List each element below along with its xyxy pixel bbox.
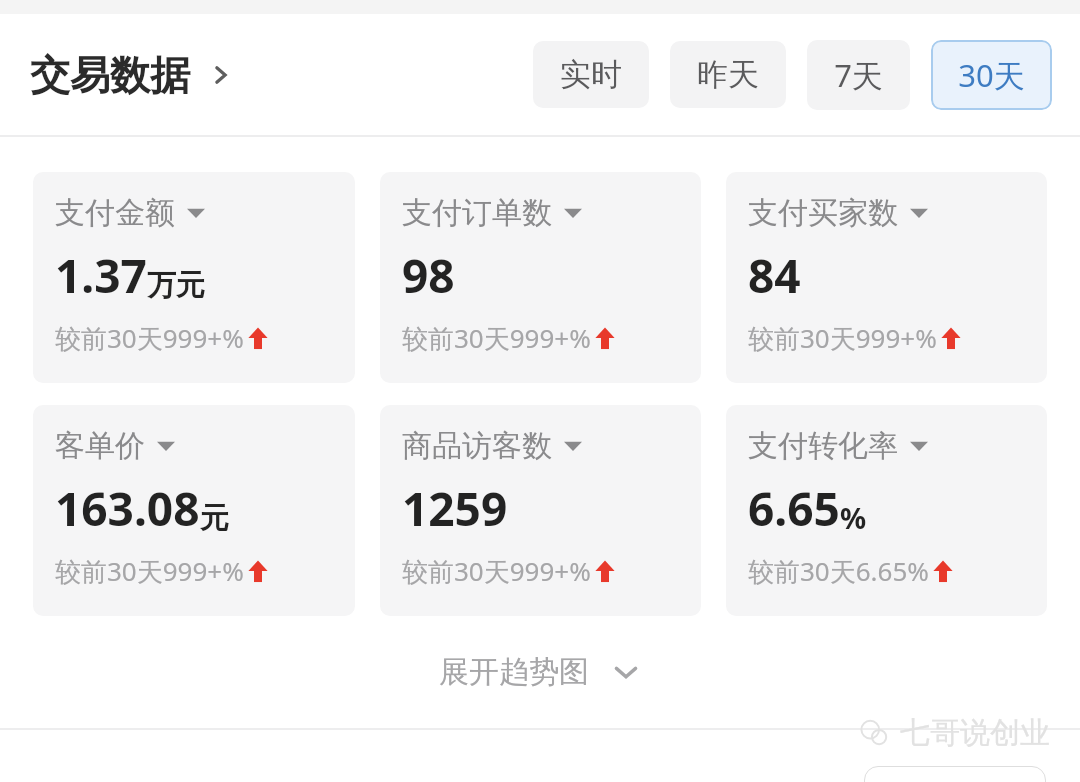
staticText: 实时 — [560, 55, 622, 94]
staticText: 6.65 — [748, 477, 840, 540]
button[interactable]: 支付金额 — [33, 172, 355, 383]
button[interactable]: 支付买家数 — [726, 172, 1047, 383]
staticText: 1.37 — [55, 244, 147, 307]
staticText: 1259 — [402, 477, 508, 540]
staticText: 支付订单数 — [402, 194, 552, 232]
staticText: 较前30天6.65% — [748, 553, 929, 589]
staticText: 商品访客数 — [402, 427, 552, 465]
staticText: 客单价 — [55, 427, 145, 465]
button[interactable]: 30天 — [931, 40, 1052, 110]
staticText: 支付金额 — [55, 194, 175, 232]
staticText: 较前30天999+% — [748, 320, 937, 356]
staticText: 7天 — [834, 54, 883, 96]
staticText: 163.08 — [55, 477, 200, 540]
staticText: 支付买家数 — [748, 194, 898, 232]
staticText: 较前30天999+% — [402, 553, 591, 589]
button[interactable]: 昨天 — [670, 41, 786, 108]
staticText: 支付转化率 — [748, 427, 898, 465]
button[interactable]: 交易数据 — [30, 50, 242, 100]
staticText: 万元 — [147, 267, 205, 304]
button[interactable]: 商品访客数 — [380, 405, 701, 616]
staticText: 较前30天999+% — [55, 553, 244, 589]
staticText: 30天 — [958, 54, 1025, 96]
button[interactable]: 7天 — [807, 40, 910, 110]
staticText: 七哥说创业 — [900, 714, 1050, 752]
staticText: 84 — [748, 244, 801, 307]
staticText: % — [840, 498, 867, 537]
staticText: 较前30天999+% — [402, 320, 591, 356]
button[interactable]: 展开趋势图 — [419, 643, 661, 701]
button[interactable]: 支付订单数 — [380, 172, 701, 383]
button[interactable]: 支付转化率 — [726, 405, 1047, 616]
button[interactable]: 实时 — [533, 41, 649, 108]
staticText: 昨天 — [697, 55, 759, 94]
staticText: 元 — [200, 500, 229, 537]
staticText: 展开趋势图 — [439, 653, 589, 691]
staticText: 较前30天999+% — [55, 320, 244, 356]
button[interactable]: 客单价 — [33, 405, 355, 616]
staticText: 交易数据 — [30, 50, 190, 100]
staticText: 98 — [402, 244, 455, 307]
